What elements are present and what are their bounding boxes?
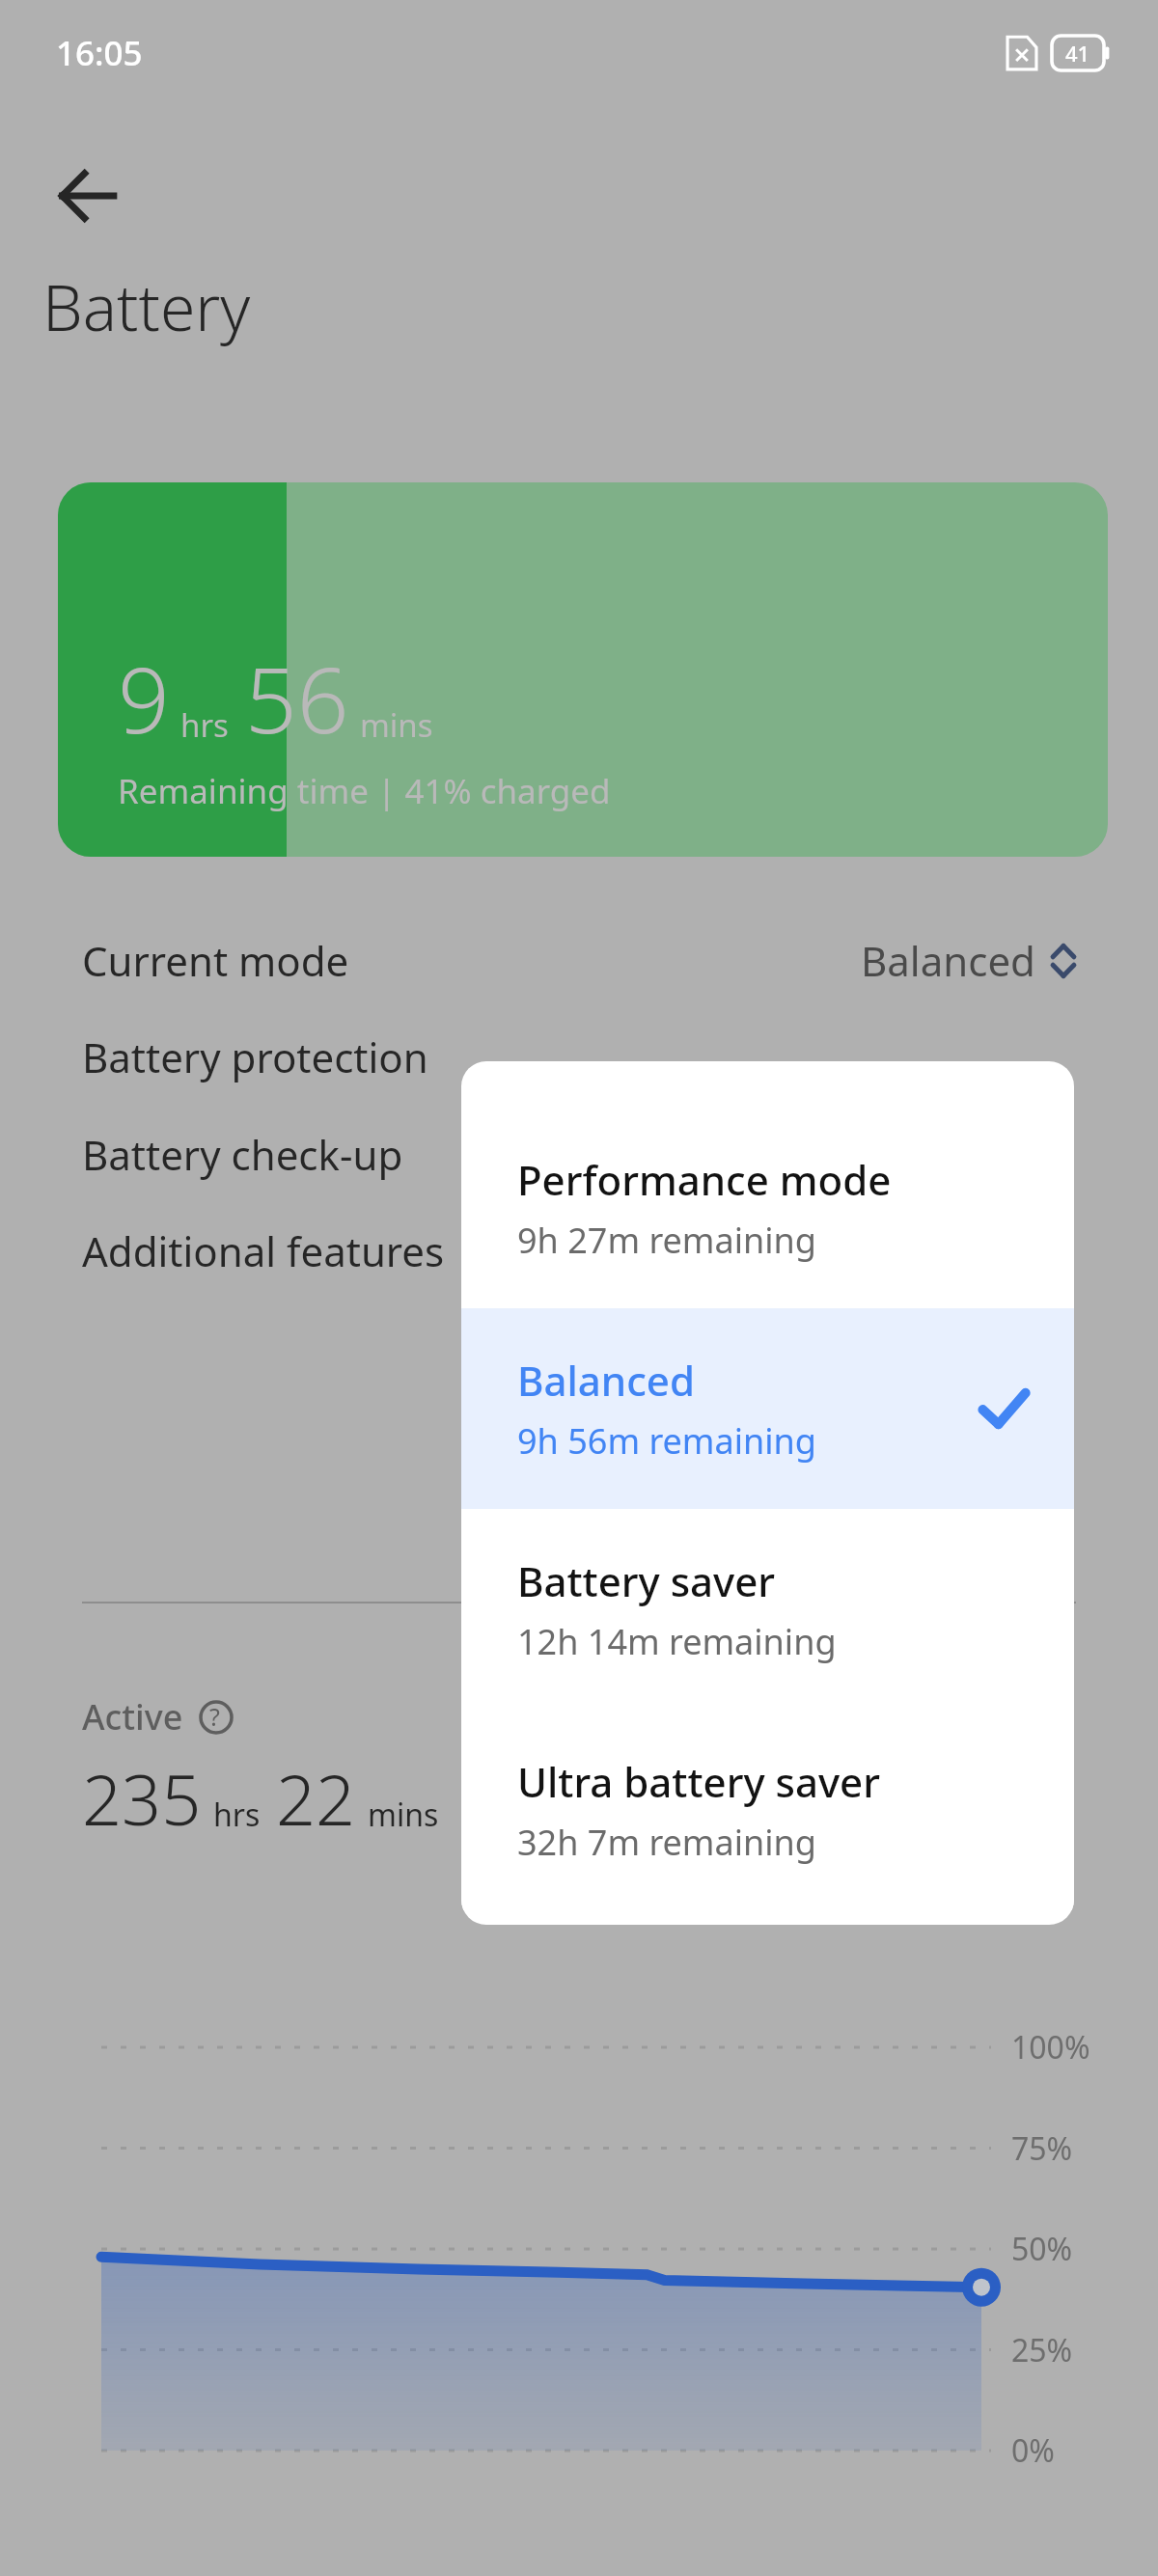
staticText: Battery protection [82,1029,428,1084]
button[interactable]: Current mode [0,912,1158,1008]
staticText: hrs [180,703,229,747]
button[interactable]: Battery check-up [0,1106,1158,1202]
staticText: Additional features [82,1223,445,1278]
staticText: Battery saver [517,1553,776,1608]
staticText: 16:05 [56,30,143,76]
button[interactable]: 9 [58,482,1108,857]
staticText: mins [360,703,433,747]
staticText: 9h 56m remaining [517,1417,816,1465]
staticText: 12h 14m remaining [517,1618,837,1665]
staticText: ? [209,1700,220,1733]
button[interactable]: Ultra battery saver [461,1710,1074,1910]
staticText: Battery [42,262,251,349]
staticText: 0% [1011,2429,1055,2472]
staticText: Remaining time | 41% charged [118,768,611,814]
staticText: hrs [213,1794,261,1836]
staticText: 50% [1011,2228,1073,2270]
staticText: 9 [118,637,170,760]
button[interactable]: Performance mode [461,1108,1074,1308]
button[interactable]: Additional features [0,1202,1158,1299]
staticText: Current mode [82,933,349,988]
staticText: Active [82,1693,183,1740]
staticText: 25% [1011,2329,1073,2371]
button[interactable]: Battery saver [461,1509,1074,1710]
staticText: 235 [82,1751,202,1846]
staticText: 56 [245,637,349,760]
staticText: 41 [1065,39,1090,68]
button[interactable]: Back [41,150,133,242]
staticText: 100% [1011,2026,1090,2069]
staticText: 9h 27m remaining [517,1217,816,1264]
staticText: 75% [1011,2127,1073,2170]
staticText: Balanced [861,933,1035,988]
button[interactable]: Balanced [461,1308,1074,1509]
staticText: 32h 7m remaining [517,1819,816,1866]
button[interactable]: Active [82,1693,244,1740]
staticText: Ultra battery saver [517,1754,880,1809]
staticText: Performance mode [517,1152,892,1207]
staticText: Balanced [517,1353,695,1408]
staticText: mins [368,1794,439,1836]
staticText: 22 [276,1751,356,1846]
staticText: Battery check-up [82,1127,403,1182]
button[interactable]: Battery protection [0,1008,1158,1105]
